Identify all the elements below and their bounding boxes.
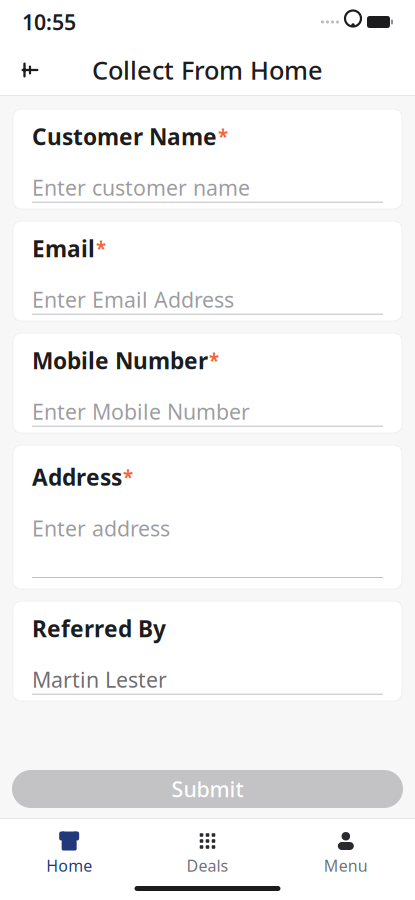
staticText: Deals xyxy=(186,855,228,876)
staticText: Home xyxy=(46,855,92,876)
button[interactable]: Email xyxy=(13,221,402,321)
button[interactable]: Back xyxy=(8,48,52,92)
button[interactable]: Customer Name xyxy=(13,109,402,209)
staticText: Enter Mobile Number xyxy=(32,397,250,426)
staticText: Address xyxy=(32,462,122,492)
staticText: Submit xyxy=(171,775,243,803)
button[interactable]: Mobile Number xyxy=(13,333,402,433)
button[interactable]: Menu xyxy=(277,825,415,882)
staticText: Email xyxy=(32,233,95,263)
staticText: Enter address xyxy=(32,514,170,542)
staticText: * xyxy=(96,236,106,261)
staticText: Enter Email Address xyxy=(32,285,234,314)
staticText: Referred By xyxy=(32,613,166,643)
button[interactable]: Address xyxy=(13,445,402,589)
staticText: * xyxy=(123,465,133,489)
button[interactable]: Home xyxy=(0,825,138,882)
button[interactable]: Referred By xyxy=(13,601,402,701)
staticText: Martin Lester xyxy=(32,665,167,694)
staticText: Mobile Number xyxy=(32,345,208,375)
staticText: * xyxy=(218,124,228,149)
staticText: Enter customer name xyxy=(32,173,250,202)
button[interactable]: Submit xyxy=(12,770,403,808)
staticText: 10:55 xyxy=(22,8,76,36)
staticText: Menu xyxy=(324,855,368,876)
staticText: * xyxy=(209,348,219,373)
staticText: Customer Name xyxy=(32,121,217,151)
staticText: Collect From Home xyxy=(92,53,323,87)
button[interactable]: Deals xyxy=(138,825,277,882)
